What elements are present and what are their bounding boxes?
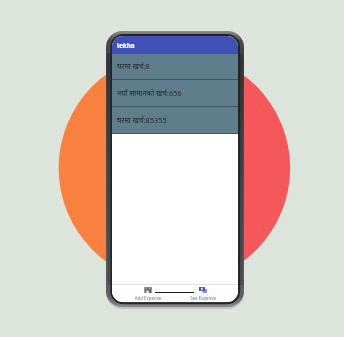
- other: Add Expense: [144, 287, 152, 293]
- button[interactable]: घरमा खर्च:85355: [112, 107, 238, 134]
- button[interactable]: See Expense: [181, 287, 225, 301]
- staticText: Add Expense: [126, 295, 170, 301]
- other: See Expense: [199, 287, 207, 293]
- button[interactable]: Add Expense: [126, 287, 170, 301]
- staticText: नयाँ सामानको खर्च:656: [117, 88, 182, 99]
- button[interactable]: घरमा खर्च:8: [112, 54, 238, 80]
- staticText: घरमा खर्च:8: [117, 61, 150, 72]
- staticText: See Expense: [181, 295, 225, 301]
- staticText: घरमा खर्च:85355: [117, 115, 167, 126]
- staticText: lekha: [117, 41, 135, 50]
- button[interactable]: नयाँ सामानको खर्च:656: [112, 80, 238, 107]
